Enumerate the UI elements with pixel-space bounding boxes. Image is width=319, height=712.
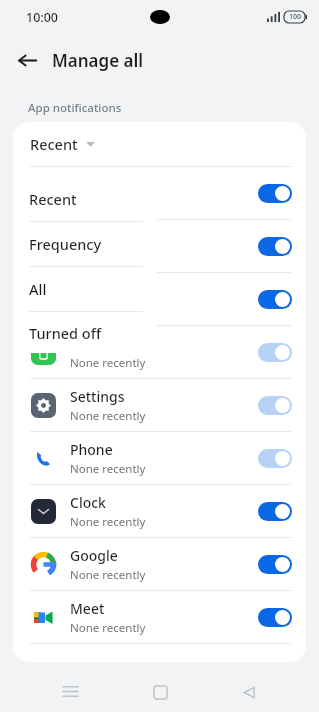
button[interactable]: Home xyxy=(140,672,180,712)
staticText: None recently xyxy=(70,461,146,477)
button[interactable]: Toggle notifications xyxy=(258,184,292,203)
button[interactable]: Toggle notifications xyxy=(258,608,292,627)
staticText: None recently xyxy=(70,620,146,636)
button[interactable]: Back xyxy=(229,672,269,712)
button[interactable]: Toggle notifications xyxy=(258,449,292,468)
button[interactable]: Phone xyxy=(13,432,306,484)
button[interactable]: Recent xyxy=(15,177,156,221)
button[interactable]: Toggle notifications xyxy=(258,396,292,415)
button[interactable]: Recent xyxy=(13,122,306,166)
button[interactable]: Toggle notifications xyxy=(13,220,306,272)
button[interactable]: Toggle notifications xyxy=(258,237,292,256)
button[interactable]: Toggle notifications xyxy=(258,290,292,309)
button[interactable]: Toggle notifications xyxy=(258,502,292,521)
button[interactable]: Toggle notifications xyxy=(258,343,292,362)
button[interactable]: Clock xyxy=(13,485,306,537)
button[interactable]: Google xyxy=(13,538,306,590)
staticText: Google xyxy=(70,546,118,565)
staticText: Frequency xyxy=(29,234,102,254)
staticText: Clock xyxy=(70,493,106,512)
button[interactable]: Turned off xyxy=(15,312,156,353)
button[interactable]: Back xyxy=(10,43,44,77)
staticText: Recent xyxy=(29,189,77,209)
staticText: Manage all xyxy=(52,49,144,72)
staticText: None recently xyxy=(70,196,146,212)
button[interactable]: Toggle notifications xyxy=(13,273,306,325)
staticText: None recently xyxy=(70,408,146,424)
staticText: Meet xyxy=(70,599,105,618)
staticText: 100 xyxy=(289,12,302,22)
staticText: Phone xyxy=(70,440,113,459)
staticText: None recently xyxy=(70,567,146,583)
button[interactable]: Toggle notifications xyxy=(258,555,292,574)
staticText: Recent xyxy=(30,134,78,154)
button[interactable]: Settings xyxy=(13,379,306,431)
staticText: Turned off xyxy=(29,323,102,343)
button[interactable]: Battery xyxy=(13,326,306,378)
staticText: 10:00 xyxy=(26,9,59,26)
staticText: App notifications xyxy=(28,100,122,116)
button[interactable]: Frequency xyxy=(15,222,156,266)
staticText: None recently xyxy=(70,514,146,530)
button[interactable]: Play Store xyxy=(13,167,306,219)
staticText: Settings xyxy=(70,387,125,406)
staticText: All xyxy=(29,279,47,299)
button[interactable]: Recent apps xyxy=(50,672,90,712)
button[interactable]: All xyxy=(15,267,156,311)
staticText: Battery xyxy=(70,334,120,353)
button[interactable]: Meet xyxy=(13,591,306,643)
staticText: None recently xyxy=(70,355,146,371)
